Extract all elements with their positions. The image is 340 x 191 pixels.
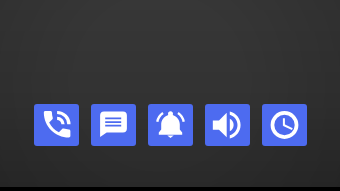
button[interactable]: Messages [91, 104, 136, 146]
button[interactable]: Volume [205, 104, 250, 146]
button[interactable]: Notifications [148, 104, 193, 146]
button[interactable]: Ring volume [34, 104, 79, 146]
button[interactable]: Clock [262, 104, 307, 146]
